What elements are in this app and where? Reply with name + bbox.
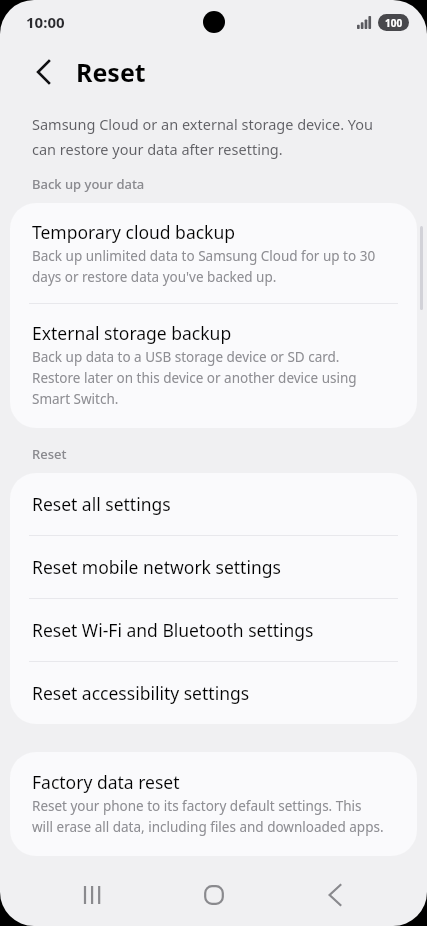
button[interactable]: Factory data reset <box>10 752 417 856</box>
staticText: Reset mobile network settings <box>32 555 281 579</box>
staticText: Reset accessibility settings <box>32 681 250 705</box>
staticText: Back up your data <box>32 175 145 193</box>
button[interactable]: Home <box>184 865 244 925</box>
button[interactable]: Reset accessibility settings <box>10 662 417 724</box>
button[interactable]: Reset all settings <box>10 473 417 535</box>
staticText: Back up data to a USB storage device or … <box>32 348 357 408</box>
staticText: Reset <box>32 445 67 463</box>
staticText: Factory data reset <box>32 770 180 794</box>
staticText: Back up unlimited data to Samsung Cloud … <box>32 247 376 286</box>
staticText: Temporary cloud backup <box>32 220 236 244</box>
button[interactable]: Reset mobile network settings <box>10 536 417 598</box>
button[interactable]: Reset Wi-Fi and Bluetooth settings <box>10 599 417 661</box>
staticText: External storage backup <box>32 321 232 345</box>
button[interactable]: Back <box>26 55 60 89</box>
button[interactable]: External storage backup <box>10 304 417 428</box>
staticText: Samsung Cloud or an external storage dev… <box>32 114 374 159</box>
staticText: Reset all settings <box>32 492 171 516</box>
staticText: Reset Wi-Fi and Bluetooth settings <box>32 618 314 642</box>
staticText: 10:00 <box>26 12 65 32</box>
staticText: Reset <box>76 55 146 89</box>
button[interactable]: Temporary cloud backup <box>10 203 417 303</box>
staticText: Reset your phone to its factory default … <box>32 797 384 836</box>
button[interactable]: Back <box>305 865 365 925</box>
staticText: 100 <box>385 16 403 30</box>
button[interactable]: Recent apps <box>62 865 122 925</box>
